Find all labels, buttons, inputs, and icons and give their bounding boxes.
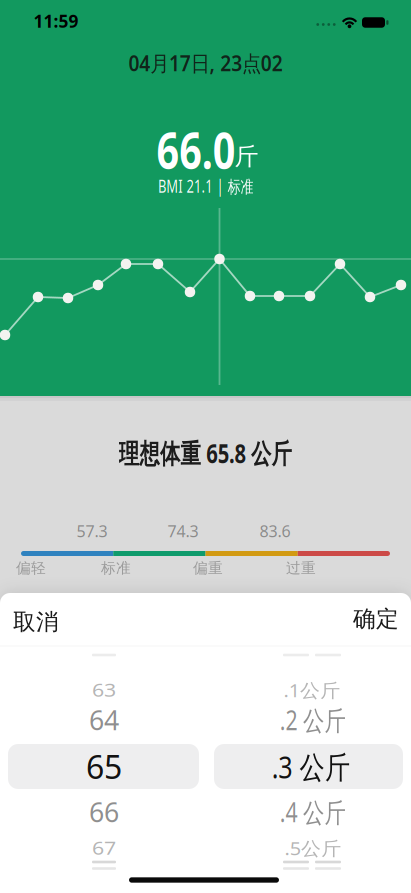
- staticText: 11:59: [33, 9, 78, 32]
- staticText: 确定: [353, 605, 399, 633]
- staticText: 83.6: [259, 520, 290, 542]
- staticText: .2 公斤: [271, 702, 354, 738]
- staticText: 取消: [13, 608, 59, 636]
- staticText: BMI 21.1 | 标准: [142, 174, 269, 197]
- button[interactable]: 确定: [343, 597, 409, 641]
- button[interactable]: 取消: [3, 600, 69, 644]
- staticText: 66.0: [145, 115, 246, 183]
- staticText: 04月17日, 23点02: [120, 49, 291, 77]
- staticText: 66: [89, 794, 119, 830]
- staticText: 标准: [101, 559, 131, 577]
- staticText: .3 公斤: [263, 746, 359, 787]
- staticText: .1公斤: [279, 675, 344, 705]
- staticText: 偏轻: [16, 559, 46, 577]
- staticText: 理想体重 65.8 公斤: [91, 435, 319, 471]
- staticText: 64: [89, 702, 119, 738]
- staticText: .4 公斤: [271, 794, 354, 830]
- staticText: 65: [86, 745, 122, 788]
- staticText: 63: [92, 676, 116, 704]
- staticText: 过重: [286, 559, 316, 577]
- staticText: 67: [92, 834, 116, 862]
- staticText: 57.3: [76, 520, 107, 542]
- staticText: 74.3: [167, 520, 198, 542]
- staticText: 偏重: [193, 559, 223, 577]
- staticText: .5公斤: [280, 833, 345, 863]
- staticText: 斤: [234, 142, 258, 171]
